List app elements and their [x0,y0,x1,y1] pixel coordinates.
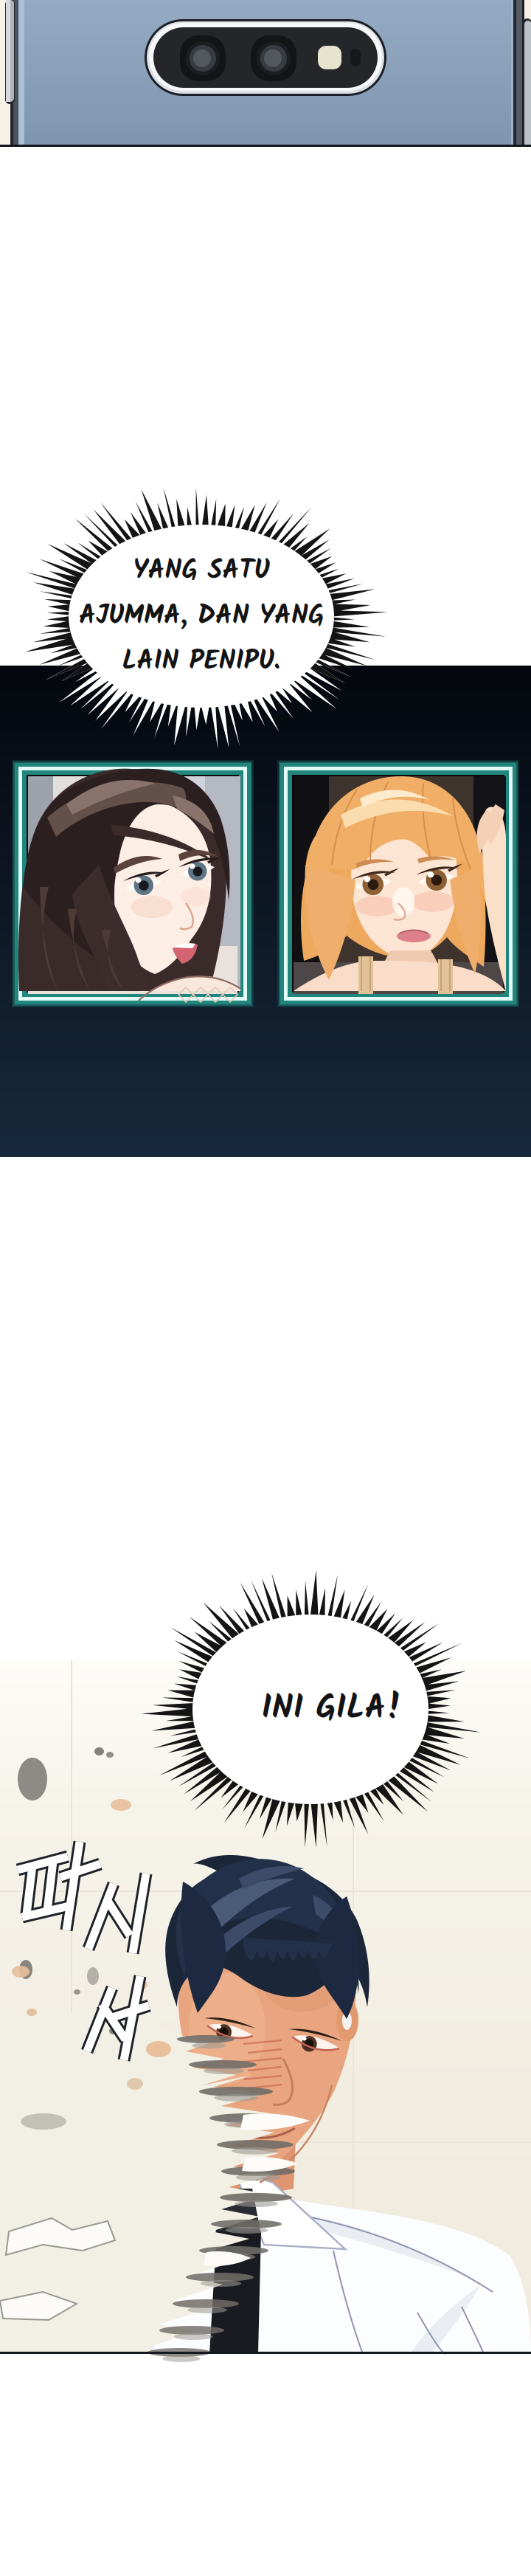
staticText: INI GILA! [261,1683,402,1736]
staticText: AJUMMA, DAN YANG [79,595,324,637]
staticText: YANG SATU [133,550,270,592]
staticText: LAIN PENIPU. [122,640,281,683]
